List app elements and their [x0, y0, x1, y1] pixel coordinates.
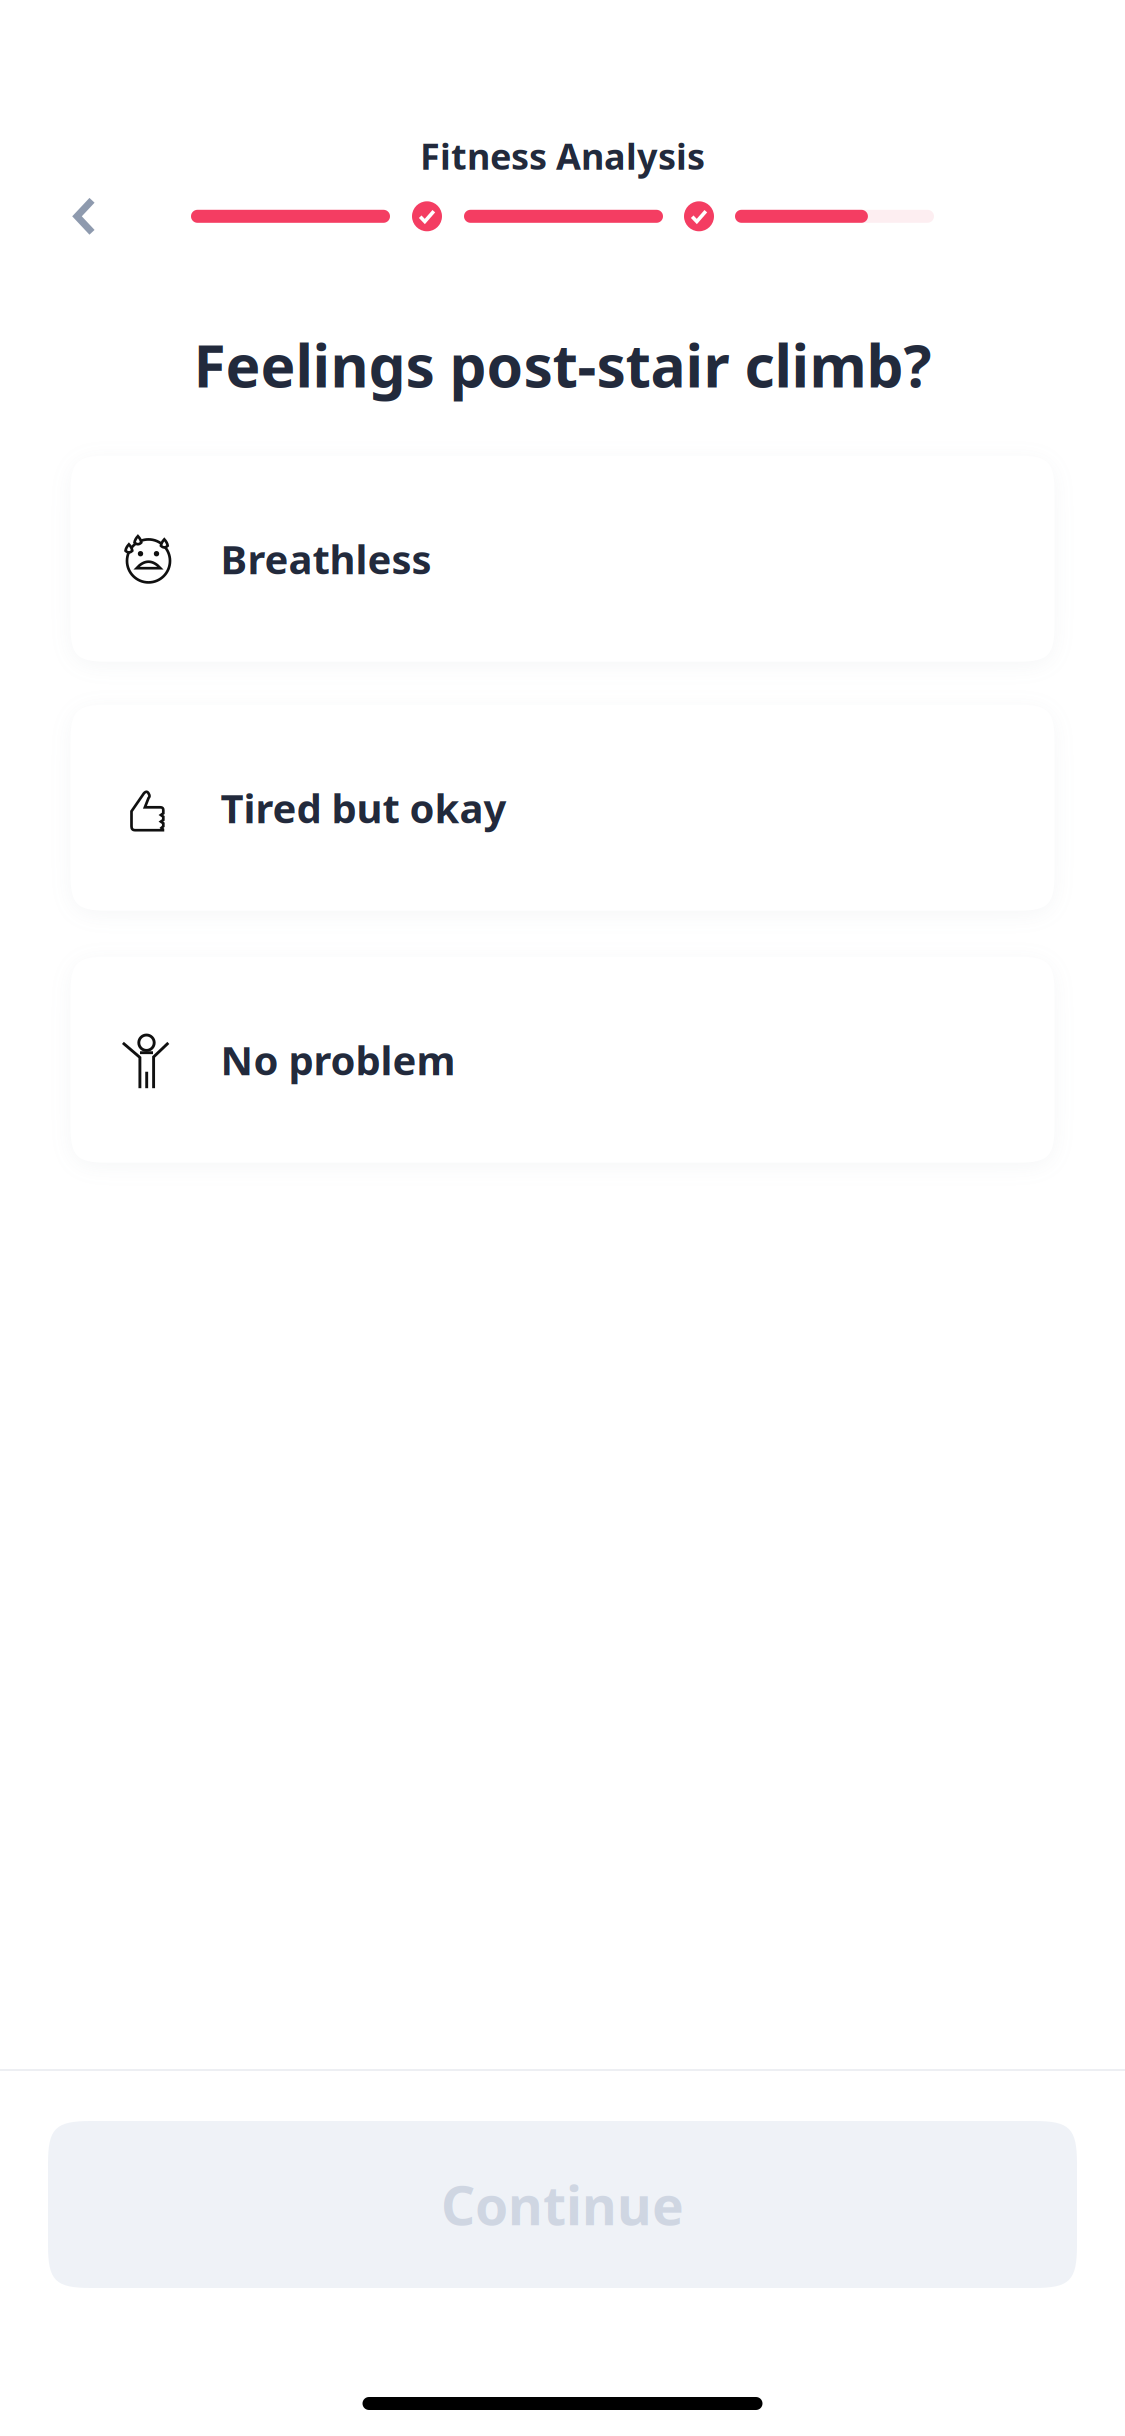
staticText: Feelings post-stair climb?: [193, 326, 931, 404]
staticText: No problem: [220, 1033, 455, 1086]
button[interactable]: Back: [33, 176, 133, 256]
button[interactable]: Tired but okay: [70, 705, 1054, 911]
staticText: Continue: [441, 2169, 684, 2240]
staticText: Tired but okay: [220, 781, 506, 834]
button[interactable]: No problem: [70, 957, 1054, 1163]
button[interactable]: Breathless: [70, 456, 1054, 662]
button[interactable]: Continue: [48, 2121, 1077, 2288]
staticText: Fitness Analysis: [420, 132, 705, 180]
staticText: Breathless: [220, 532, 431, 585]
